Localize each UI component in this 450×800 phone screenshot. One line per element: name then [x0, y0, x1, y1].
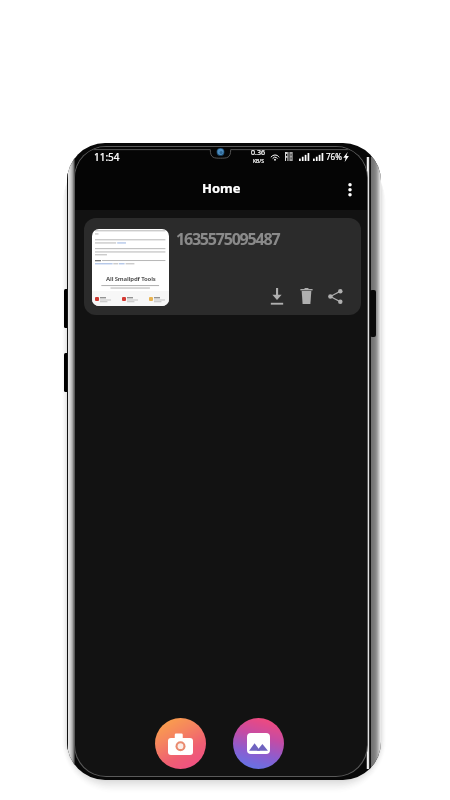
- staticText: 0.36: [251, 148, 265, 158]
- button[interactable]: Pick image from gallery: [233, 718, 284, 769]
- button[interactable]: Share: [324, 285, 346, 307]
- staticText: 1635575095487: [176, 228, 280, 250]
- staticText: KB/S: [253, 158, 264, 165]
- button[interactable]: Take photo with camera: [155, 718, 206, 769]
- staticText: All Smallpdf Tools: [106, 275, 156, 283]
- staticText: Home: [202, 179, 241, 197]
- button[interactable]: Download: [266, 285, 288, 307]
- button[interactable]: All Smallpdf Tools: [84, 218, 361, 315]
- button[interactable]: More options: [334, 172, 366, 204]
- button[interactable]: Delete: [295, 285, 317, 307]
- staticText: 11:54: [94, 150, 120, 164]
- staticText: 76%: [326, 151, 342, 162]
